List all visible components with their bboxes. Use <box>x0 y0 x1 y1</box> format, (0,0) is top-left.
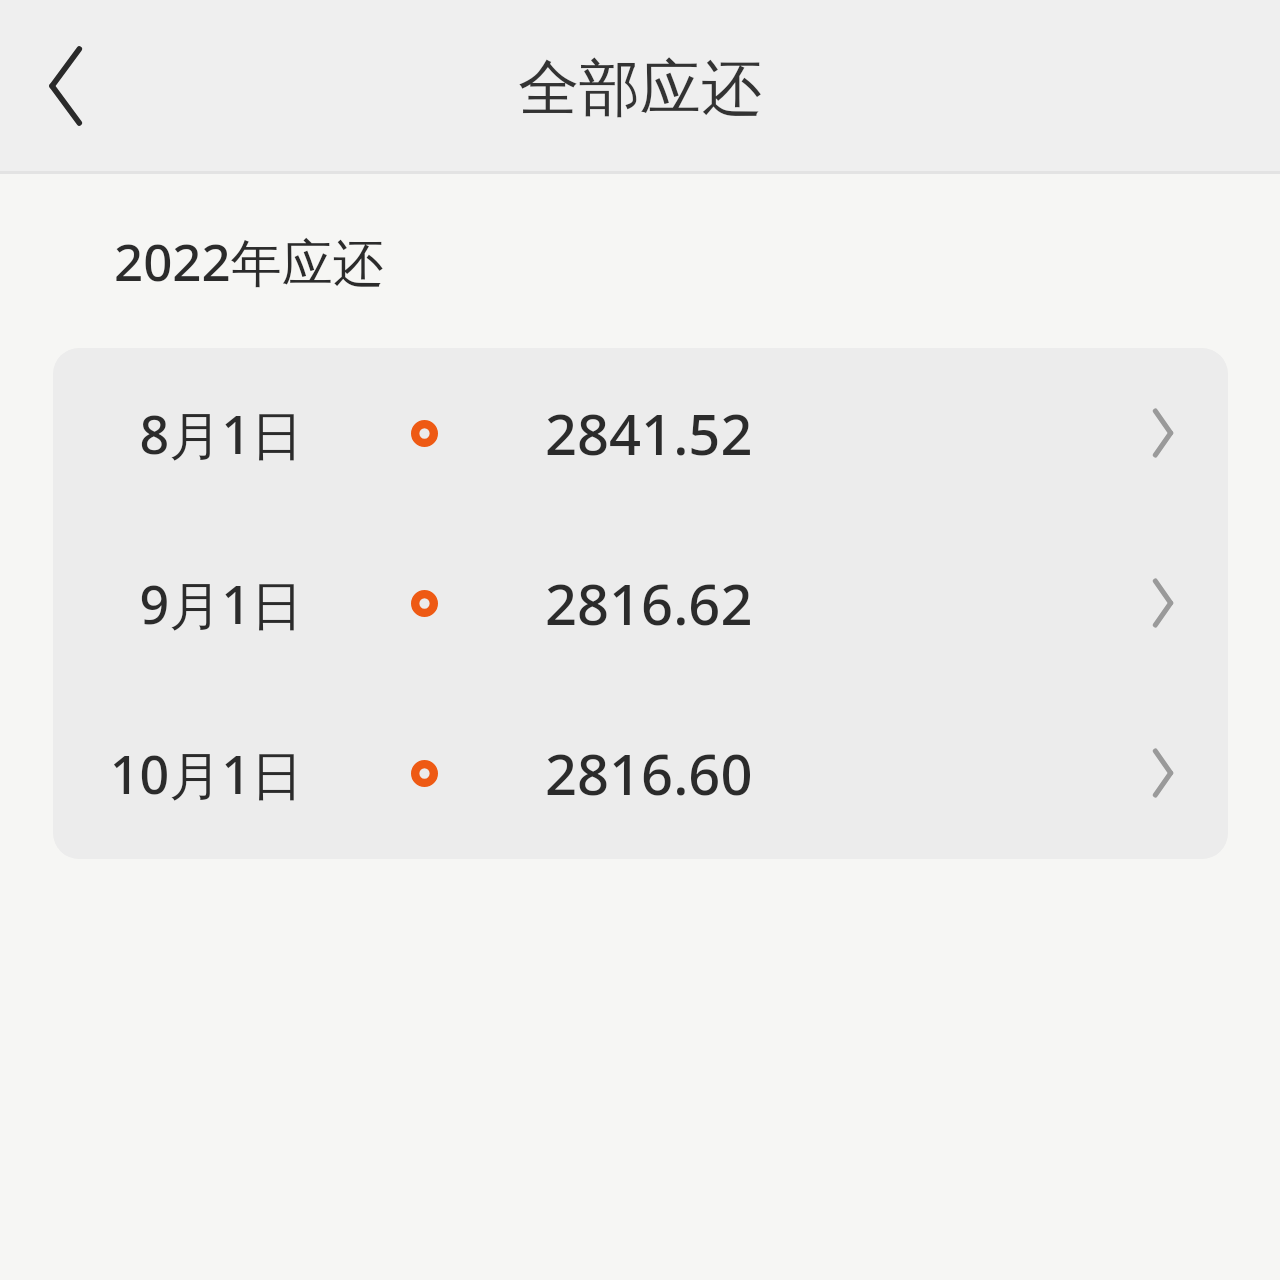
staticText: 全部应还 <box>0 50 1280 127</box>
button[interactable]: 9月1日 <box>53 518 1228 688</box>
staticText: 8月1日 <box>53 398 303 469</box>
staticText: 2816.60 <box>545 735 1098 811</box>
staticText: 9月1日 <box>53 568 303 639</box>
staticText: 2816.62 <box>545 565 1098 641</box>
staticText: 2841.52 <box>545 395 1098 471</box>
button[interactable]: Back <box>12 31 122 141</box>
staticText: 10月1日 <box>53 738 303 809</box>
button[interactable]: 10月1日 <box>53 688 1228 858</box>
button[interactable]: 8月1日 <box>53 348 1228 518</box>
staticText: 2022年应还 <box>114 226 384 296</box>
